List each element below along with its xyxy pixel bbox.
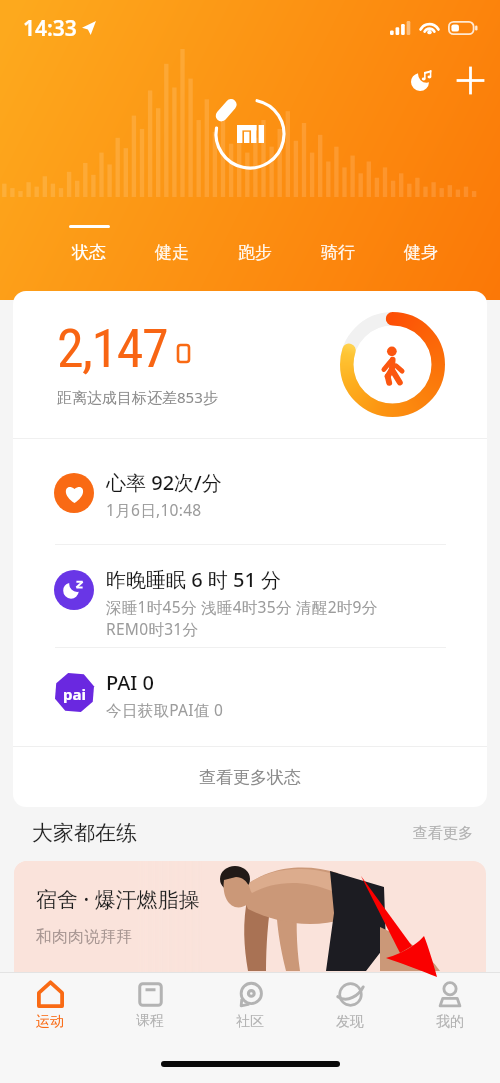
staticText: 健走	[155, 242, 189, 263]
button[interactable]: 查看更多状态	[13, 747, 487, 807]
staticText: 和肉肉说拜拜	[36, 927, 132, 947]
staticText: 查看更多	[413, 824, 473, 843]
staticText: 社区	[236, 1013, 264, 1031]
button[interactable]: pai	[13, 648, 487, 746]
button[interactable]: 我的	[400, 972, 500, 1040]
staticText: 14:33	[23, 14, 77, 43]
staticText: 1月6日,10:48	[106, 499, 202, 520]
button[interactable]: Sleep music	[400, 58, 444, 102]
staticText: 我的	[436, 1013, 464, 1031]
staticText: 骑行	[321, 242, 355, 263]
staticText: 健身	[404, 242, 438, 263]
staticText: 心率 92次/分	[106, 469, 222, 496]
staticText: 发现	[336, 1013, 364, 1031]
staticText: 昨晚睡眠 6 时 51 分	[106, 566, 282, 593]
staticText: 深睡1时45分 浅睡4时35分 清醒2时9分 REM0时31分	[106, 596, 378, 640]
button[interactable]: 社区	[200, 972, 300, 1040]
button[interactable]: 状态	[49, 225, 129, 263]
button[interactable]: 昨晚睡眠 6 时 51 分	[13, 545, 487, 647]
button[interactable]: 宿舍 · 爆汗燃脂操	[14, 861, 486, 1036]
button[interactable]: 发现	[300, 972, 400, 1040]
button[interactable]: 骑行	[298, 225, 378, 263]
button[interactable]: 健走	[132, 225, 212, 263]
staticText: 运动	[36, 1013, 64, 1031]
staticText: 2,147	[57, 317, 168, 380]
button[interactable]: 课程	[100, 972, 200, 1040]
button[interactable]: 健身	[381, 225, 461, 263]
button[interactable]: 跑步	[215, 225, 295, 263]
staticText: pai	[63, 684, 86, 704]
staticText: 大家都在练	[32, 820, 137, 846]
staticText: 跑步	[238, 242, 272, 263]
button[interactable]: 心率 92次/分	[13, 439, 487, 544]
button[interactable]: Add	[448, 58, 492, 102]
staticText: PAI 0	[106, 669, 155, 696]
button[interactable]: 查看更多	[413, 824, 473, 843]
staticText: 状态	[72, 242, 106, 263]
staticText: 课程	[136, 1012, 164, 1030]
staticText: 查看更多状态	[199, 767, 301, 788]
button[interactable]: 运动	[0, 972, 100, 1040]
staticText: 今日获取PAI值 0	[106, 699, 224, 720]
staticText: 宿舍 · 爆汗燃脂操	[36, 885, 200, 914]
staticText: 距离达成目标还差853步	[57, 387, 218, 407]
